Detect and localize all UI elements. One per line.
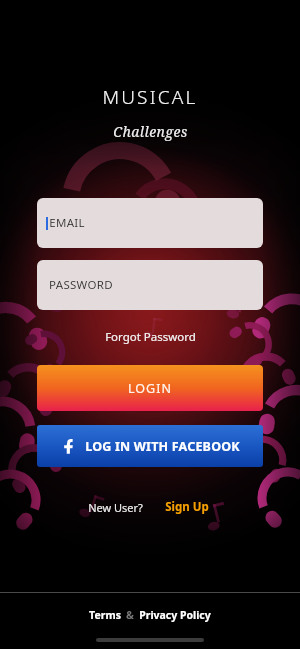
staticText: New User?: [88, 500, 143, 515]
staticText: Privacy Policy: [139, 608, 211, 622]
button[interactable]: Terms: [86, 606, 124, 624]
staticText: Forgot Password: [105, 329, 196, 345]
staticText: LOG IN WITH FACEBOOK: [85, 438, 240, 455]
button[interactable]: LOGIN: [37, 365, 263, 411]
button[interactable]: EMAIL: [37, 198, 263, 248]
staticText: &: [126, 608, 134, 622]
button[interactable]: Privacy Policy: [136, 606, 214, 624]
staticText: PASSWORD: [49, 277, 113, 293]
staticText: LOGIN: [128, 380, 172, 397]
staticText: Sign Up: [165, 499, 209, 515]
staticText: EMAIL: [49, 215, 85, 231]
button[interactable]: LOG IN WITH FACEBOOK: [37, 425, 263, 467]
button[interactable]: Sign Up: [161, 497, 213, 517]
staticText: Terms: [89, 608, 121, 622]
staticText: Challenges: [113, 122, 188, 141]
button[interactable]: Forgot Password: [95, 326, 206, 348]
button[interactable]: PASSWORD: [37, 260, 263, 310]
staticText: MUSICAL: [102, 84, 198, 110]
